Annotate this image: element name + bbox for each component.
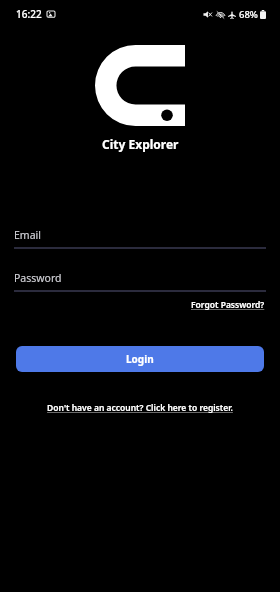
button[interactable]: Forgot Password? — [190, 297, 266, 313]
staticText: Don't have an account? Click here to reg… — [47, 402, 233, 414]
button[interactable]: Login — [16, 346, 264, 372]
other: City Explorer logo — [95, 45, 185, 126]
staticText: 68% — [239, 8, 258, 21]
button[interactable]: Email — [14, 228, 266, 249]
staticText: 16:22 — [16, 7, 42, 21]
staticText: Login — [126, 352, 154, 366]
staticText: Email — [14, 228, 41, 242]
button[interactable]: Don't have an account? Click here to reg… — [43, 399, 237, 417]
staticText: City Explorer — [102, 136, 179, 152]
staticText: Forgot Password? — [191, 299, 265, 311]
staticText: Password — [14, 271, 62, 285]
button[interactable]: Password — [14, 271, 266, 292]
